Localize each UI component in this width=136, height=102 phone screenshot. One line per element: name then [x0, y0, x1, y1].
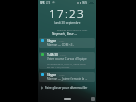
staticText: Maman — CDM <3 -: [47, 43, 75, 47]
staticText: Skype: [47, 73, 57, 77]
button[interactable]: 1:48:30: [39, 52, 95, 69]
button[interactable]: Skype: [39, 38, 95, 48]
staticText: 17:23: [49, 6, 86, 22]
staticText: SFR: [40, 1, 45, 5]
button[interactable]: Home: [64, 98, 71, 100]
button[interactable]: Skype: [39, 72, 95, 82]
staticText: lundi 30 septembre: [54, 21, 81, 25]
staticText: Faire glisser pour déverrouiller: [45, 86, 88, 90]
staticText: 96%: [82, 1, 88, 5]
staticText: Maman — j'aime t'envoie la ...: [47, 77, 88, 81]
staticText: Skype: [47, 39, 57, 43]
staticText: LTE: [46, 1, 51, 5]
staticText: 14:10: [60, 54, 66, 57]
staticText: 1:48:30: [47, 53, 58, 57]
staticText: 14:31: [59, 40, 65, 43]
staticText: Votre course Cursus d'Equipe: [47, 57, 87, 61]
staticText: Neymark, Beur ...: [52, 32, 78, 36]
button[interactable]: Camera: [91, 97, 95, 101]
staticText: 13:58: [59, 74, 65, 77]
staticText: appuyez pour ouvrir la notif.: [57, 29, 88, 32]
staticText: Le 30/08/2015, à 07:11, votre carte est …: [47, 62, 86, 68]
